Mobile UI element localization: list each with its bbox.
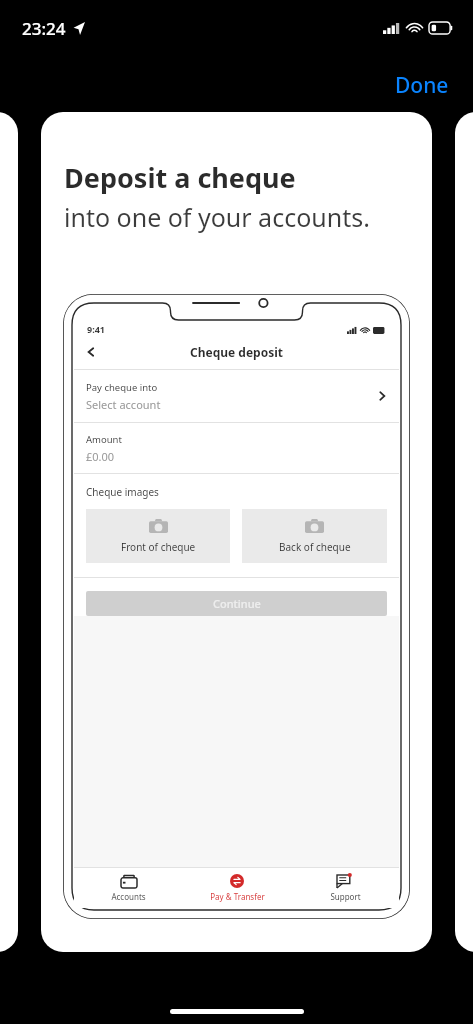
other: Choose account <box>377 391 387 401</box>
button[interactable]: Back <box>74 335 399 369</box>
button[interactable]: Pay cheque into <box>74 370 399 422</box>
staticText: Done <box>395 71 449 100</box>
staticText: Front of cheque <box>121 540 196 554</box>
staticText: Pay & Transfer <box>210 891 265 902</box>
staticText: Select account <box>86 397 161 412</box>
button[interactable]: Amount <box>74 423 399 473</box>
staticText: Pay cheque into <box>86 381 158 394</box>
button[interactable]: Done <box>389 67 455 104</box>
staticText: Amount <box>86 433 122 446</box>
staticText: Support <box>330 891 361 902</box>
button[interactable]: Support <box>291 868 399 908</box>
staticText: Back of cheque <box>279 540 351 554</box>
staticText: Continue <box>213 596 261 611</box>
staticText: Deposit a cheque <box>64 159 296 196</box>
button[interactable]: Continue <box>86 591 387 616</box>
staticText: 23:24 <box>22 17 66 40</box>
staticText: Cheque images <box>86 485 159 499</box>
staticText: into one of your accounts. <box>64 200 370 234</box>
other: Back <box>86 347 96 357</box>
staticText: Accounts <box>111 891 146 902</box>
button[interactable]: Back of cheque <box>242 509 387 563</box>
staticText: Cheque deposit <box>190 344 283 360</box>
button[interactable]: Pay & Transfer <box>183 868 291 908</box>
button[interactable]: Accounts <box>74 868 183 908</box>
button[interactable]: Front of cheque <box>86 509 230 563</box>
staticText: 9:41 <box>87 323 105 335</box>
staticText: £0.00 <box>86 449 115 464</box>
